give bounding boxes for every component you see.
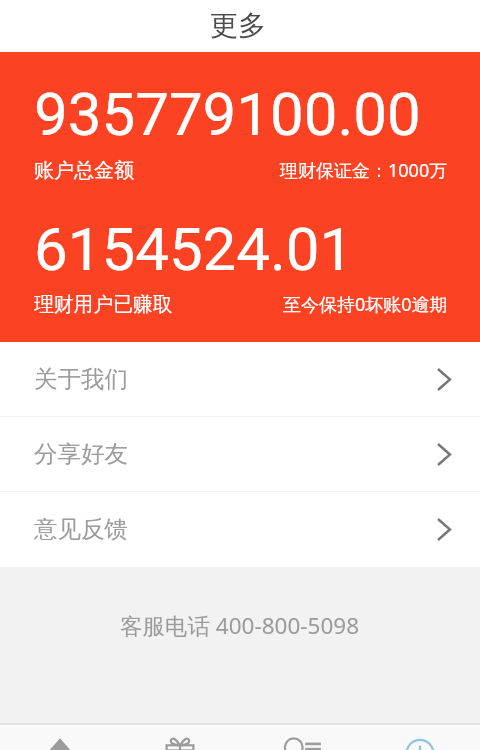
button[interactable]: 意见反馈 [0,492,480,566]
button[interactable]: Orders [240,725,360,750]
staticText: 935779100.00 [34,79,421,149]
staticText: 关于我们 [34,364,128,394]
button[interactable]: 分享好友 [0,417,480,491]
button[interactable]: Gifts [120,725,240,750]
button[interactable]: More [360,725,480,750]
staticText: 更多 [210,8,266,43]
staticText: 理财用户已赚取 [34,292,173,317]
button[interactable]: Home [0,725,120,750]
button[interactable]: 关于我们 [0,342,480,416]
staticText: 客服电话 400-800-5098 [120,610,360,641]
staticText: 至今保持0坏账0逾期 [283,292,448,317]
button[interactable]: 客服电话 400-800-5098 [114,608,366,643]
staticText: 分享好友 [34,439,128,469]
staticText: 理财保证金：1000万 [280,158,448,183]
staticText: 意见反馈 [34,514,128,544]
staticText: 账户总金额 [34,158,134,183]
staticText: 6154524.01 [34,214,354,284]
